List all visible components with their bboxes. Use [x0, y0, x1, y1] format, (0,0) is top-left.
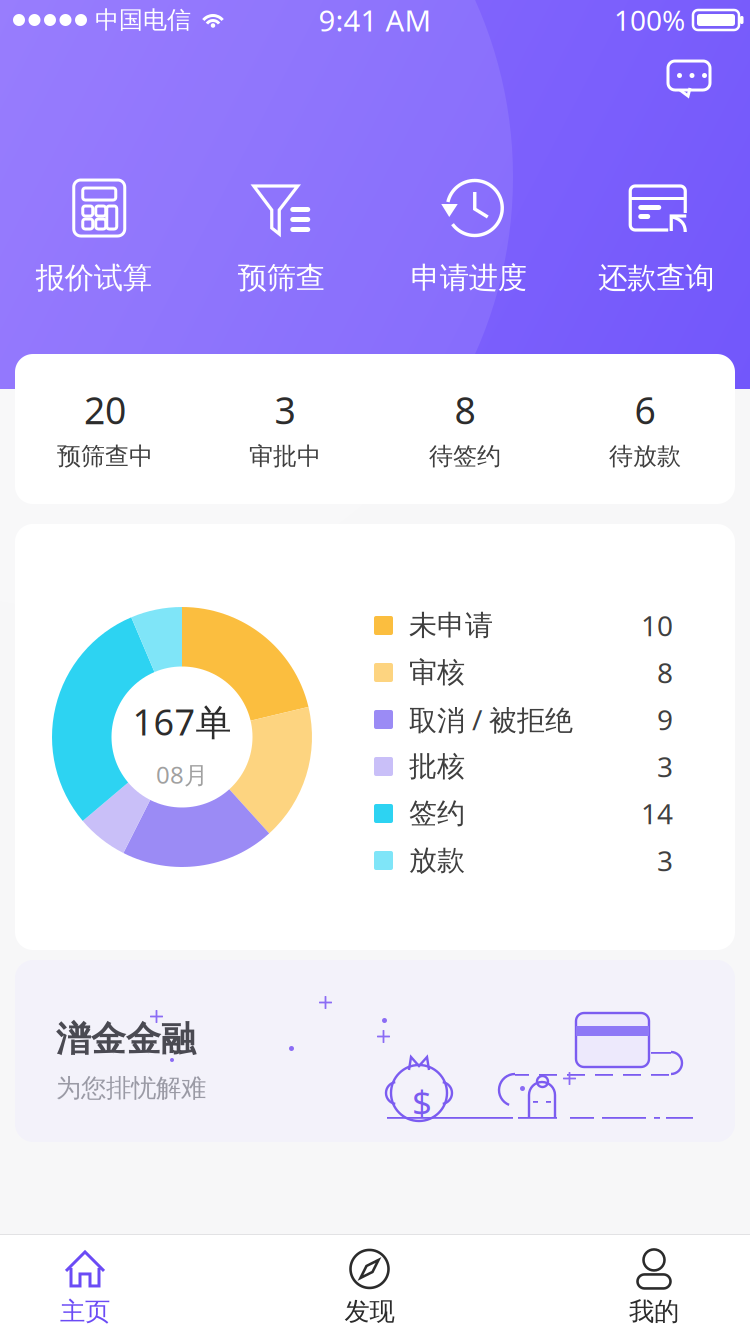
staticText: 预筛查: [238, 260, 325, 296]
staticText: 发现: [344, 1296, 394, 1327]
button[interactable]: 6: [555, 354, 735, 504]
button[interactable]: 8: [375, 354, 555, 504]
staticText: 批核: [409, 749, 465, 784]
button[interactable]: 主页: [25, 1234, 145, 1334]
staticText: 3: [657, 748, 673, 785]
staticText: 3: [274, 385, 295, 435]
staticText: 未申请: [409, 608, 493, 643]
staticText: 主页: [60, 1296, 110, 1327]
staticText: 中国电信: [95, 5, 191, 35]
staticText: 预筛查中: [57, 442, 153, 471]
button[interactable]: 预筛查: [187, 181, 375, 296]
staticText: 9:41 AM: [318, 0, 431, 39]
button[interactable]: 我的: [594, 1234, 714, 1334]
staticText: 100%: [614, 1, 685, 39]
staticText: 还款查询: [598, 260, 714, 296]
staticText: 8: [454, 385, 475, 435]
staticText: $: [412, 1079, 432, 1125]
staticText: 审核: [409, 655, 465, 690]
staticText: 9: [657, 701, 673, 738]
button[interactable]: 20: [15, 354, 195, 504]
staticText: 我的: [629, 1296, 679, 1327]
button[interactable]: 还款查询: [562, 181, 750, 296]
staticText: 14: [641, 795, 673, 832]
button[interactable]: 报价试算: [0, 181, 187, 296]
staticText: 待签约: [429, 442, 501, 471]
staticText: 申请进度: [411, 260, 527, 296]
staticText: 08月: [156, 758, 208, 790]
staticText: 审批中: [249, 442, 321, 471]
button[interactable]: 申请进度: [375, 181, 562, 296]
staticText: 为您排忧解难: [56, 1073, 206, 1104]
staticText: 8: [657, 654, 673, 691]
staticText: 取消 / 被拒绝: [409, 701, 573, 738]
staticText: 放款: [409, 843, 465, 878]
staticText: 签约: [409, 796, 465, 831]
button[interactable]: 在线客服: [668, 61, 710, 99]
staticText: 20: [84, 385, 126, 435]
staticText: 潽金金融: [56, 1018, 196, 1061]
staticText: 待放款: [609, 442, 681, 471]
button[interactable]: 3: [195, 354, 375, 504]
button[interactable]: 发现: [309, 1234, 429, 1334]
staticText: 167单: [132, 698, 231, 745]
staticText: 3: [657, 842, 673, 879]
staticText: 6: [634, 385, 655, 435]
staticText: 10: [641, 607, 673, 644]
staticText: 报价试算: [36, 260, 152, 296]
button[interactable]: $: [0, 960, 750, 1142]
